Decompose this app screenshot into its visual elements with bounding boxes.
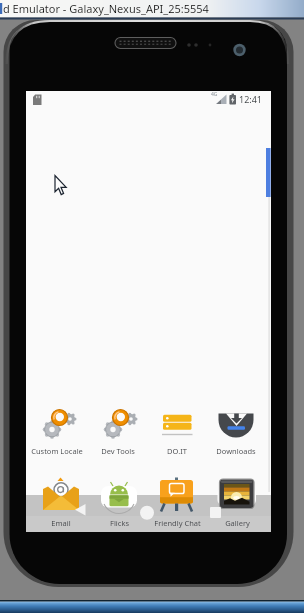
staticText: Flicks <box>110 518 129 528</box>
button[interactable]: Gallery <box>208 474 266 528</box>
staticText: 4G <box>211 91 218 98</box>
staticText: Friendly Chat <box>154 518 201 528</box>
staticText: DO.IT <box>167 446 187 456</box>
staticText: Email <box>51 518 71 528</box>
button[interactable]: Custom Locale <box>28 404 86 456</box>
button[interactable]: Flicks <box>90 474 148 528</box>
button[interactable]: Email <box>32 474 90 528</box>
button[interactable]: DO.IT <box>148 404 206 456</box>
staticText: Gallery <box>225 518 250 528</box>
button[interactable] <box>206 503 224 521</box>
button[interactable] <box>72 501 90 519</box>
staticText: d Emulator - Galaxy_Nexus_API_25:5554 <box>3 1 209 16</box>
button[interactable]: Downloads <box>207 404 265 456</box>
staticText: Custom Locale <box>31 446 83 456</box>
button[interactable]: Friendly Chat <box>148 474 206 528</box>
staticText: Downloads <box>216 446 256 456</box>
button[interactable] <box>139 504 156 521</box>
button[interactable]: Dev Tools <box>89 404 147 456</box>
staticText: 12:41 <box>239 93 263 105</box>
staticText: Dev Tools <box>101 446 135 456</box>
